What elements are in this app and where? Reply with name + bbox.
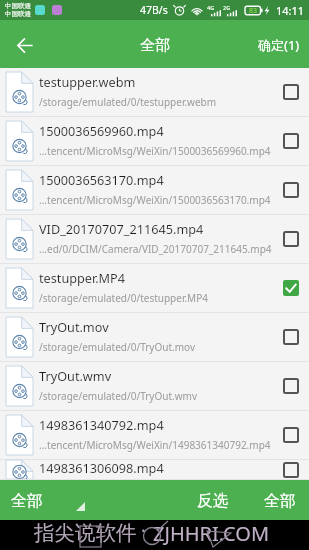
staticText: /storage/emulated/0/testupper.MP4: [39, 291, 208, 305]
staticText: 反选: [197, 491, 229, 511]
button[interactable]: TryOut.mov: [0, 313, 309, 362]
staticText: ...ed/0/DCIM/Camera/VID_20170707_211645.…: [39, 242, 272, 256]
staticText: 全部: [11, 491, 43, 511]
staticText: /storage/emulated/0/TryOut.mov: [39, 340, 195, 354]
staticText: 1500036569960.mp4: [39, 122, 164, 139]
button[interactable]: testupper.webm: [0, 68, 309, 117]
staticText: /storage/emulated/0/TryOut.wmv: [39, 389, 197, 403]
staticText: 全部: [140, 36, 170, 55]
button[interactable]: testupper.MP4: [0, 264, 309, 313]
staticText: ZJHHRI.COM: [153, 520, 270, 547]
staticText: ...tencent/MicroMsg/WeiXin/1498361340792…: [39, 438, 271, 452]
staticText: 中国联通: [5, 2, 31, 10]
staticText: 4G: [207, 4, 215, 11]
button[interactable]: Select file: [281, 327, 301, 347]
button[interactable]: 全部: [255, 480, 309, 520]
staticText: 1500036563170.mp4: [39, 171, 164, 188]
button[interactable]: 1498361306098.mp4: [0, 460, 309, 480]
button[interactable]: Select file: [281, 278, 301, 298]
staticText: VID_20170707_211645.mp4: [39, 220, 204, 237]
staticText: 1498361306098.mp4: [39, 459, 164, 476]
button[interactable]: Select file: [281, 425, 301, 445]
staticText: 1498361340792.mp4: [39, 416, 164, 433]
staticText: 14:11: [276, 3, 305, 18]
button[interactable]: Select file: [281, 82, 301, 102]
button[interactable]: Select file: [281, 460, 301, 479]
button[interactable]: Select file: [281, 180, 301, 200]
staticText: testupper.webm: [39, 73, 136, 90]
button[interactable]: TryOut.wmv: [0, 362, 309, 411]
button[interactable]: 全部: [0, 481, 95, 519]
staticText: TryOut.mov: [39, 318, 109, 335]
button[interactable]: 1500036569960.mp4: [0, 117, 309, 166]
button[interactable]: Select file: [281, 229, 301, 249]
button[interactable]: 1500036563170.mp4: [0, 166, 309, 215]
button[interactable]: VID_20170707_211645.mp4: [0, 215, 309, 264]
staticText: ...tencent/MicroMsg/WeiXin/1500036569960…: [39, 144, 271, 158]
staticText: 83: [249, 6, 258, 16]
button[interactable]: 反选: [188, 480, 238, 520]
staticText: 中国联通: [5, 10, 31, 18]
staticText: 47B/s: [140, 3, 168, 17]
staticText: /storage/emulated/0/testupper.webm: [39, 95, 217, 109]
staticText: 2G: [223, 4, 231, 11]
staticText: ·: [141, 518, 146, 543]
button[interactable]: 确定(1): [248, 23, 309, 65]
button[interactable]: Select file: [281, 131, 301, 151]
staticText: 确定(1): [258, 36, 300, 54]
button[interactable]: Select file: [281, 376, 301, 396]
staticText: TryOut.wmv: [39, 367, 112, 384]
button[interactable]: Back: [8, 29, 40, 61]
staticText: ...tencent/MicroMsg/WeiXin/1500036563170…: [39, 193, 271, 207]
button[interactable]: 1498361340792.mp4: [0, 411, 309, 460]
staticText: testupper.MP4: [39, 269, 126, 286]
staticText: 全部: [264, 491, 296, 511]
staticText: 指尖说软件: [34, 520, 137, 546]
